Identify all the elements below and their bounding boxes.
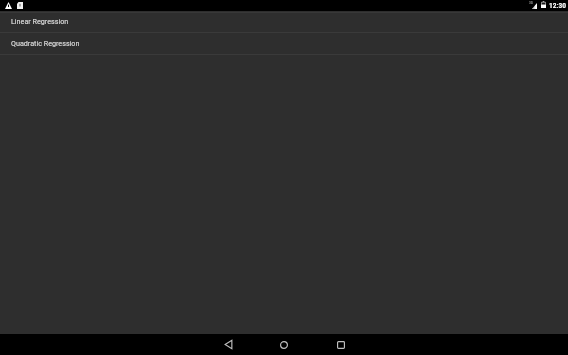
staticText: 3G bbox=[529, 1, 533, 5]
staticText: Linear Regression bbox=[11, 17, 69, 25]
button[interactable]: Home bbox=[272, 334, 296, 355]
button[interactable]: Back bbox=[216, 334, 240, 355]
button[interactable]: Linear Regression bbox=[0, 11, 568, 32]
button[interactable]: Quadratic Regression bbox=[0, 33, 568, 54]
staticText: Quadratic Regression bbox=[11, 39, 80, 47]
staticText: 12:30 bbox=[549, 1, 566, 10]
button[interactable]: Recent apps bbox=[329, 334, 353, 355]
